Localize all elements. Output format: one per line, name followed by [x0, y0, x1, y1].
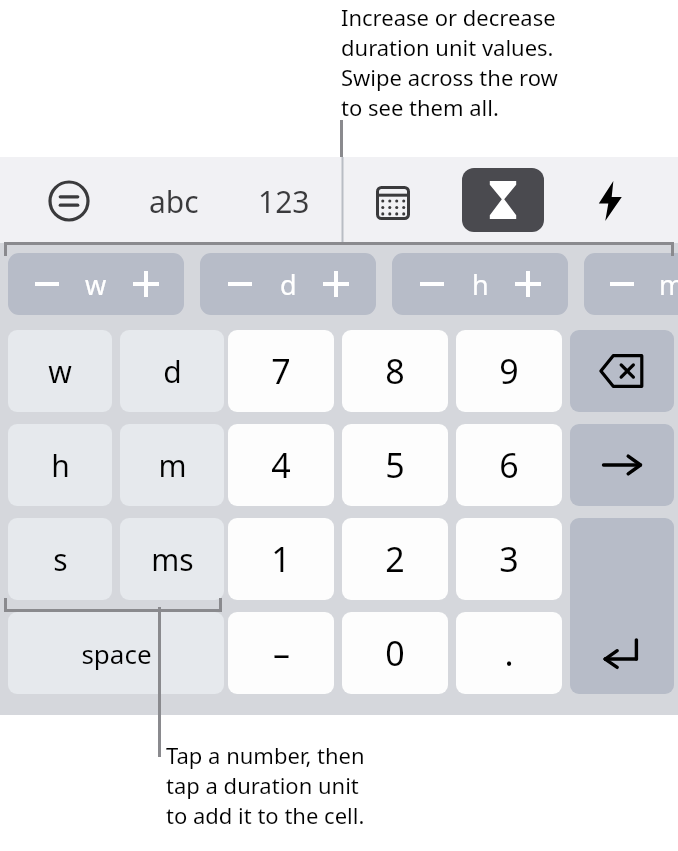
- button[interactable]: Next: [570, 424, 674, 506]
- button[interactable]: .: [456, 612, 562, 694]
- staticText: s: [53, 539, 68, 580]
- staticText: ms: [151, 539, 194, 580]
- staticText: 3: [499, 536, 519, 582]
- staticText: 2: [385, 536, 405, 582]
- button[interactable]: Increase d: [312, 253, 360, 315]
- button[interactable]: m: [120, 424, 224, 506]
- staticText: m: [158, 445, 187, 486]
- button[interactable]: 9: [456, 330, 562, 412]
- staticText: h: [51, 445, 70, 486]
- button[interactable]: d: [120, 330, 224, 412]
- button[interactable]: Quick actions: [584, 175, 636, 227]
- button[interactable]: h: [8, 424, 112, 506]
- button[interactable]: 1: [228, 518, 334, 600]
- button[interactable]: 0: [342, 612, 448, 694]
- button[interactable]: Decrease w: [8, 253, 184, 315]
- button[interactable]: space: [8, 612, 224, 694]
- button[interactable]: 7: [228, 330, 334, 412]
- button[interactable]: Formula: [46, 178, 92, 224]
- staticText: Tap a number, then: [166, 740, 365, 770]
- staticText: 0: [385, 630, 405, 676]
- button[interactable]: Decrease h: [408, 253, 456, 315]
- button[interactable]: Decrease d: [216, 253, 264, 315]
- staticText: duration unit values.: [341, 32, 554, 62]
- staticText: 9: [499, 348, 519, 394]
- staticText: .: [504, 630, 514, 676]
- button[interactable]: 4: [228, 424, 334, 506]
- staticText: to add it to the cell.: [166, 800, 365, 830]
- button[interactable]: Return: [570, 518, 674, 694]
- button[interactable]: 2: [342, 518, 448, 600]
- button[interactable]: Decrease m: [584, 253, 678, 315]
- button[interactable]: 123: [246, 178, 322, 224]
- button[interactable]: s: [8, 518, 112, 600]
- button[interactable]: Decrease m: [598, 253, 646, 315]
- button[interactable]: Decrease w: [23, 253, 71, 315]
- staticText: w: [85, 266, 107, 303]
- button[interactable]: 8: [342, 330, 448, 412]
- staticText: Increase or decrease: [341, 2, 556, 32]
- staticText: 7: [271, 348, 291, 394]
- button[interactable]: –: [228, 612, 334, 694]
- button[interactable]: 5: [342, 424, 448, 506]
- staticText: w: [48, 351, 72, 392]
- button[interactable]: Delete: [570, 330, 674, 412]
- staticText: d: [280, 266, 297, 303]
- button[interactable]: Decrease d: [200, 253, 376, 315]
- button[interactable]: Decrease h: [392, 253, 568, 315]
- button[interactable]: Increase w: [122, 253, 170, 315]
- staticText: m: [659, 266, 678, 303]
- staticText: to see them all.: [341, 92, 499, 122]
- button[interactable]: Duration: [462, 168, 544, 232]
- staticText: h: [472, 266, 489, 303]
- button[interactable]: ms: [120, 518, 224, 600]
- staticText: Swipe across the row: [341, 62, 558, 92]
- button[interactable]: abc: [136, 178, 212, 224]
- staticText: 5: [385, 442, 405, 488]
- staticText: space: [81, 636, 152, 671]
- staticText: 123: [258, 181, 310, 222]
- staticText: 4: [271, 442, 291, 488]
- staticText: 1: [271, 536, 291, 582]
- button[interactable]: 3: [456, 518, 562, 600]
- staticText: tap a duration unit: [166, 770, 359, 800]
- button[interactable]: Date: [368, 178, 418, 228]
- button[interactable]: 6: [456, 424, 562, 506]
- button[interactable]: Increase h: [504, 253, 552, 315]
- staticText: abc: [149, 181, 199, 222]
- staticText: 8: [385, 348, 405, 394]
- button[interactable]: w: [8, 330, 112, 412]
- staticText: 6: [499, 442, 519, 488]
- staticText: –: [273, 630, 290, 676]
- staticText: d: [163, 351, 182, 392]
